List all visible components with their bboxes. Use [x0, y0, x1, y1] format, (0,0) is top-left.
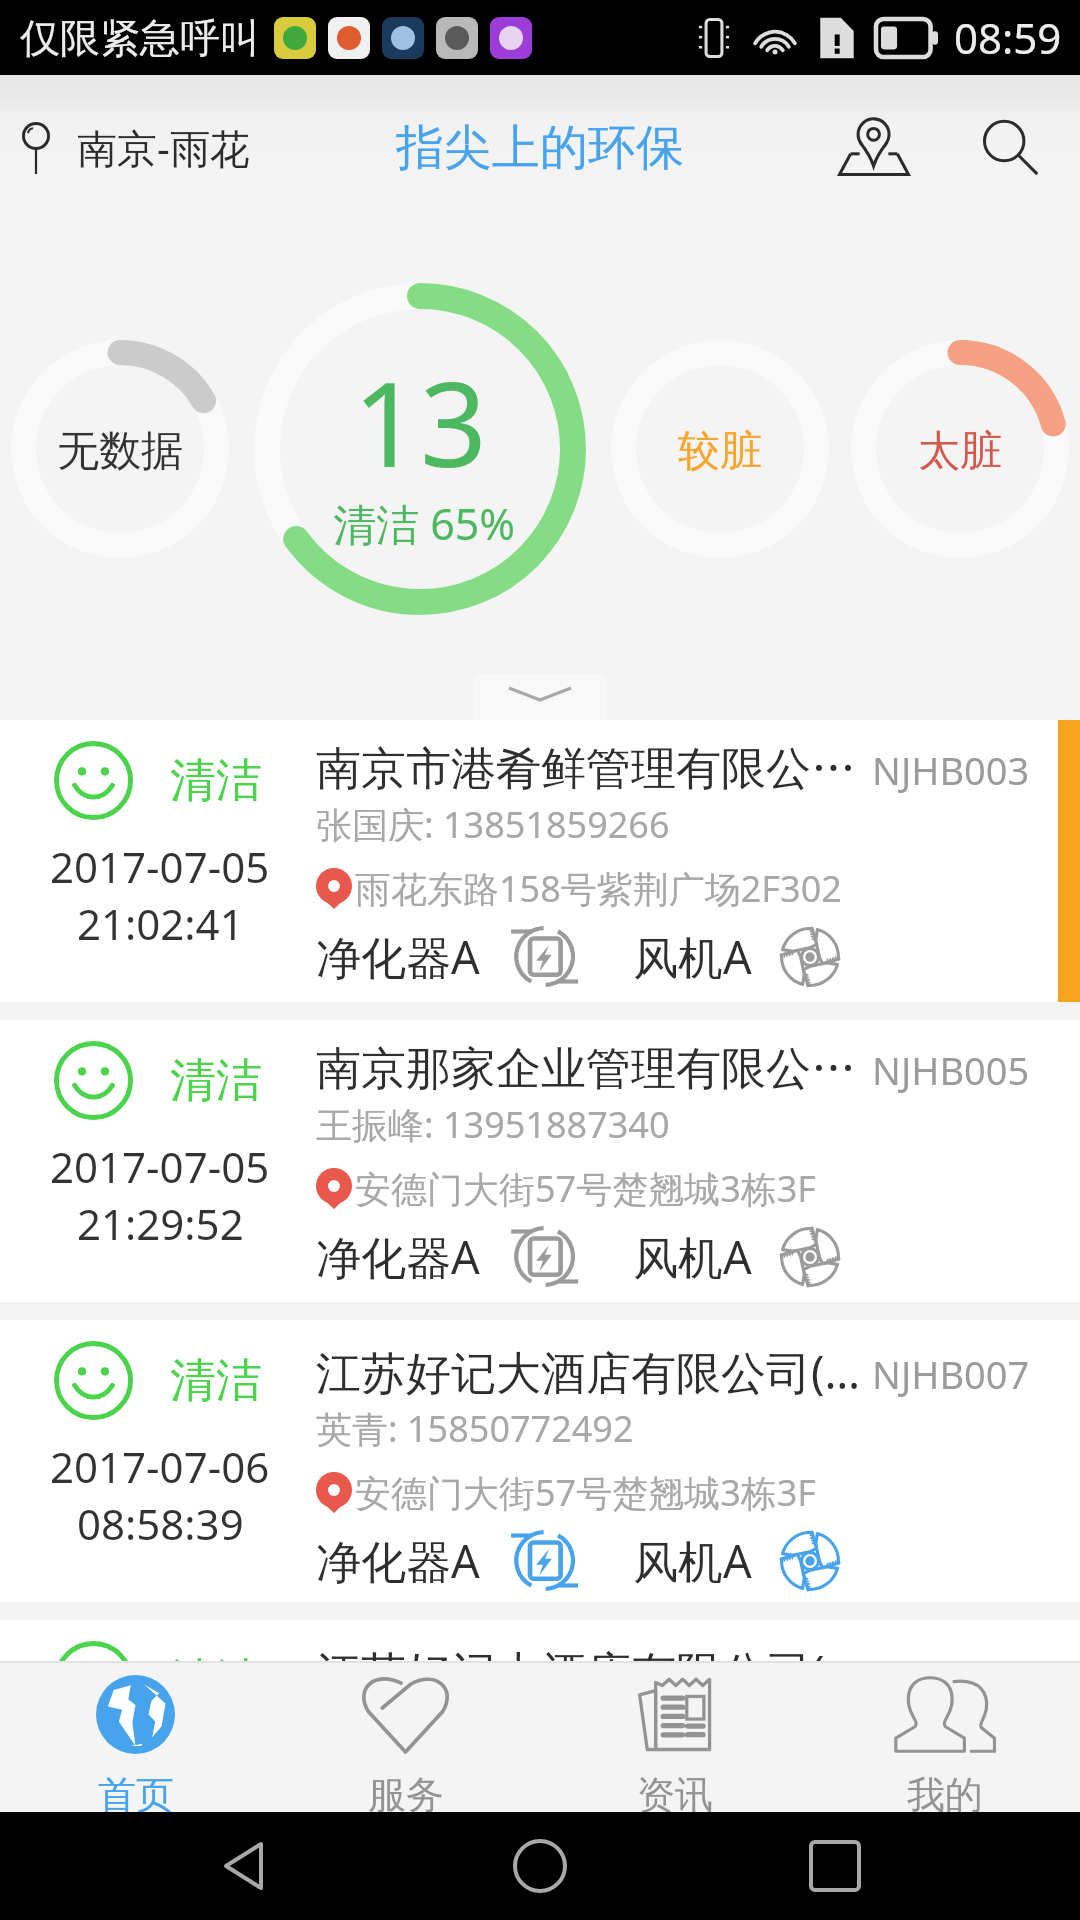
- staticText: 安德门大街57号楚翘城3栋3F: [355, 1468, 817, 1517]
- staticText: 英青: 15850772492: [316, 1704, 634, 1753]
- button[interactable]: 资讯: [540, 1663, 810, 1812]
- staticText: 清洁: [170, 752, 262, 810]
- staticText: 雨花东路158号紫荆广场2F302: [355, 864, 842, 913]
- button[interactable]: 首页: [0, 1663, 270, 1812]
- staticText: 08:58:39: [77, 1495, 244, 1552]
- button[interactable]: Recents: [785, 1816, 885, 1916]
- staticText: 净化器A: [316, 926, 480, 987]
- button[interactable]: 清洁: [0, 1620, 1080, 1902]
- staticText: 江苏好记大酒店有限公司(南京: [316, 1341, 878, 1402]
- staticText: 清洁: [170, 1352, 262, 1410]
- staticText: 服务: [368, 1771, 444, 1812]
- button[interactable]: 清洁: [0, 1320, 1080, 1602]
- staticText: 我的: [907, 1771, 983, 1812]
- staticText: 风机A: [633, 1530, 752, 1591]
- staticText: 08:59: [954, 9, 1062, 66]
- button[interactable]: 服务: [270, 1663, 540, 1812]
- staticText: 安德门大街57号楚翘城3栋3F: [355, 1164, 817, 1213]
- staticText: 南京-雨花: [77, 120, 250, 175]
- staticText: 09:10:12: [77, 1795, 244, 1852]
- button[interactable]: Search: [940, 75, 1080, 220]
- staticText: 无数据: [57, 425, 183, 478]
- staticText: 2017-07-05: [50, 1138, 270, 1195]
- staticText: 2017-07-05: [50, 838, 270, 895]
- staticText: 江苏好记大酒店有限公司(南京: [316, 1641, 878, 1702]
- button[interactable]: 南京-雨花: [22, 102, 260, 193]
- staticText: 清洁 65%: [333, 494, 516, 553]
- staticText: 资讯: [637, 1771, 713, 1812]
- button[interactable]: Home: [490, 1816, 590, 1916]
- staticText: NJHB003: [872, 744, 1030, 796]
- staticText: NJHB008: [872, 1648, 1030, 1700]
- staticText: 风机A: [633, 1226, 752, 1287]
- staticText: 清洁: [170, 1652, 262, 1710]
- staticText: 指尖上的环保: [396, 118, 684, 178]
- staticText: 13: [353, 342, 487, 501]
- staticText: 较脏: [678, 425, 762, 478]
- staticText: NJHB007: [872, 1348, 1030, 1400]
- button[interactable]: Map: [808, 75, 940, 220]
- staticText: 王振峰: 13951887340: [316, 1100, 670, 1149]
- button[interactable]: 我的: [810, 1663, 1080, 1812]
- staticText: 21:02:41: [77, 895, 244, 952]
- button[interactable]: Expand: [473, 674, 607, 720]
- button[interactable]: 清洁: [0, 720, 1080, 1002]
- staticText: 净化器A: [316, 1226, 480, 1287]
- staticText: 南京那家企业管理有限公司餐饮: [316, 1041, 878, 1098]
- button[interactable]: Back: [195, 1816, 295, 1916]
- staticText: 清洁: [170, 1052, 262, 1110]
- staticText: 仅限紧急呼叫: [20, 13, 260, 63]
- button[interactable]: 清洁: [0, 1020, 1080, 1302]
- staticText: 英青: 15850772492: [316, 1404, 634, 1453]
- staticText: 21:29:52: [77, 1195, 244, 1252]
- staticText: 首页: [98, 1771, 174, 1812]
- staticText: 南京市港肴鲜管理有限公司餐饮: [316, 741, 878, 798]
- staticText: 太脏: [918, 425, 1002, 478]
- staticText: NJHB005: [872, 1044, 1030, 1096]
- staticText: 2017-07-06: [50, 1738, 270, 1795]
- staticText: 张国庆: 13851859266: [316, 800, 670, 849]
- staticText: 2017-07-06: [50, 1438, 270, 1495]
- staticText: 安德门大街57号楚翘城3栋3F: [355, 1768, 817, 1817]
- staticText: 净化器A: [316, 1530, 480, 1591]
- staticText: 风机A: [633, 926, 752, 987]
